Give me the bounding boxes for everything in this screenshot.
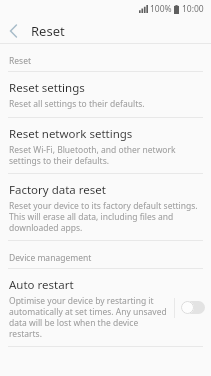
staticText: Device management [9, 252, 92, 264]
staticText: Reset settings [9, 80, 85, 96]
button[interactable]: Factory data reset [0, 174, 211, 241]
staticText: 100% [150, 3, 172, 15]
button[interactable]: Reset network settings [0, 118, 211, 174]
button[interactable]: Navigate up [0, 18, 26, 44]
staticText: Auto restart [9, 277, 74, 293]
staticText: Reset [9, 55, 32, 67]
staticText: Factory data reset [9, 182, 106, 198]
staticText: Reset [31, 22, 65, 40]
staticText: Reset all settings to their defaults. [9, 98, 145, 110]
button[interactable]: Reset settings [0, 72, 211, 118]
staticText: 10:00 [182, 3, 204, 15]
button[interactable]: Auto restart [0, 269, 211, 346]
button[interactable]: Auto restart toggle [181, 301, 205, 314]
staticText: Reset network settings [9, 126, 133, 142]
staticText: Reset your device to its factory default… [9, 200, 199, 233]
staticText: Reset Wi-Fi, Bluetooth, and other networ… [9, 144, 199, 166]
staticText: Optimise your device by restarting it au… [9, 295, 168, 339]
